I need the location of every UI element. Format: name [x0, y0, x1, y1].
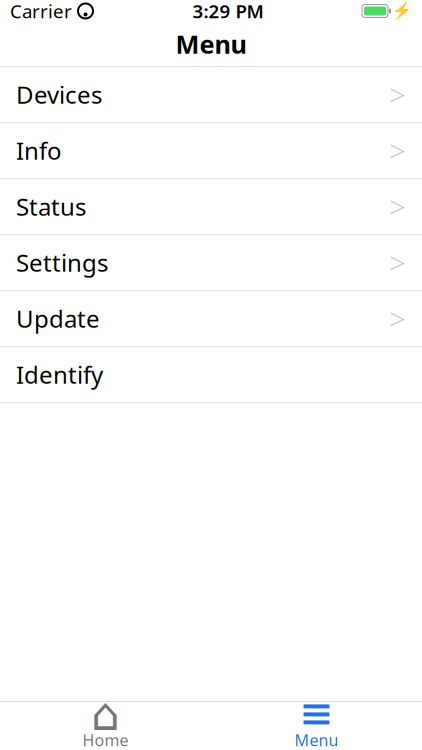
- button[interactable]: Update: [0, 291, 422, 347]
- staticText: Identify: [16, 359, 103, 390]
- button[interactable]: Identify: [0, 347, 422, 403]
- staticText: ⌂: [91, 689, 120, 740]
- staticText: 3:29 PM: [192, 0, 263, 23]
- button[interactable]: Info: [0, 123, 422, 179]
- staticText: Update: [16, 303, 100, 334]
- staticText: >: [389, 243, 406, 282]
- staticText: >: [389, 299, 406, 338]
- button[interactable]: Devices: [0, 67, 422, 123]
- staticText: Home: [82, 729, 128, 750]
- button[interactable]: Menu: [211, 702, 422, 750]
- staticText: >: [389, 131, 406, 170]
- staticText: Status: [16, 191, 86, 222]
- button[interactable]: Status: [0, 179, 422, 235]
- button[interactable]: Settings: [0, 235, 422, 291]
- staticText: Devices: [16, 79, 102, 110]
- staticText: >: [389, 187, 406, 226]
- staticText: Menu: [294, 729, 338, 750]
- button[interactable]: ⌂: [0, 702, 211, 750]
- staticText: ⚡: [392, 2, 412, 20]
- staticText: Info: [16, 135, 62, 166]
- staticText: Settings: [16, 247, 108, 278]
- staticText: Carrier: [10, 0, 72, 23]
- staticText: >: [389, 75, 406, 114]
- staticText: Menu: [175, 27, 246, 61]
